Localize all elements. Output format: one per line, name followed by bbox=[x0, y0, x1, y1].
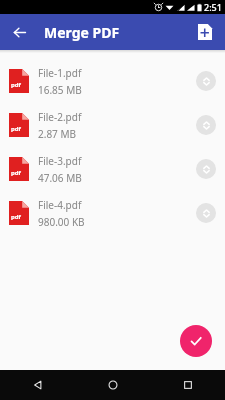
button[interactable]: Back bbox=[0, 370, 75, 400]
button[interactable]: Recents bbox=[150, 370, 225, 400]
staticText: File-4.pdf bbox=[38, 198, 82, 212]
button[interactable]: pdf bbox=[0, 147, 225, 191]
staticText: 2.87 MB bbox=[38, 127, 77, 141]
button[interactable]: Add PDF bbox=[192, 19, 218, 45]
button[interactable]: Merge bbox=[180, 325, 212, 357]
staticText: pdf bbox=[11, 81, 21, 89]
staticText: File-3.pdf bbox=[38, 154, 82, 168]
button[interactable]: Reorder bbox=[196, 159, 216, 179]
staticText: 2:51 bbox=[204, 1, 222, 13]
button[interactable]: pdf bbox=[0, 59, 225, 103]
staticText: pdf bbox=[11, 213, 21, 221]
staticText: 16.85 MB bbox=[38, 83, 82, 97]
button[interactable]: pdf bbox=[0, 191, 225, 235]
staticText: Merge PDF bbox=[44, 23, 120, 42]
staticText: pdf bbox=[11, 125, 21, 133]
staticText: File-2.pdf bbox=[38, 110, 82, 124]
button[interactable]: pdf bbox=[0, 103, 225, 147]
staticText: File-1.pdf bbox=[38, 66, 82, 80]
staticText: 980.00 KB bbox=[38, 215, 85, 229]
staticText: 47.06 MB bbox=[38, 171, 82, 185]
button[interactable]: Reorder bbox=[196, 115, 216, 135]
button[interactable]: Home bbox=[75, 370, 150, 400]
button[interactable]: Reorder bbox=[196, 71, 216, 91]
button[interactable]: Reorder bbox=[196, 203, 216, 223]
staticText: pdf bbox=[11, 169, 21, 177]
button[interactable]: Back bbox=[6, 19, 32, 45]
